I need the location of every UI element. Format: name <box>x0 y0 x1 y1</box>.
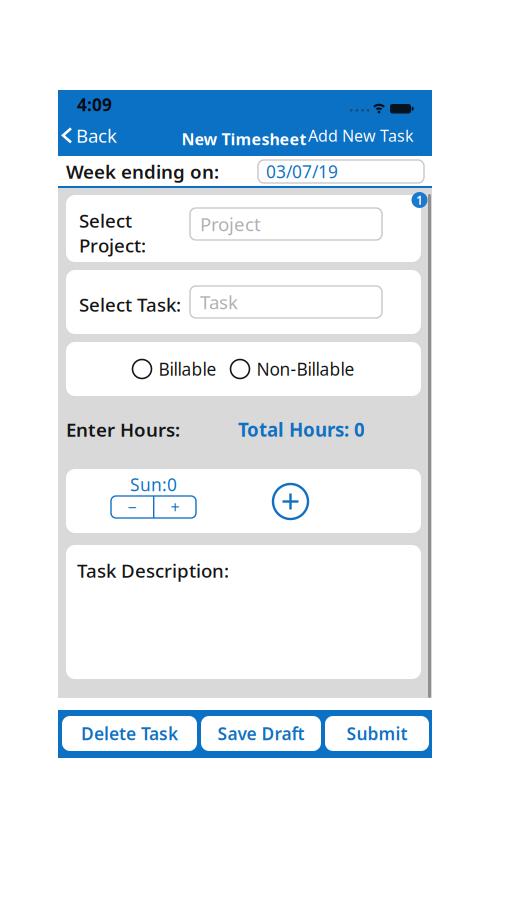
staticText: Task Description: <box>77 558 229 583</box>
button[interactable]: Submit <box>325 716 429 751</box>
button[interactable]: Delete Task <box>62 716 197 751</box>
staticText: + <box>170 496 179 518</box>
button[interactable]: Back <box>63 123 117 148</box>
staticText: Back <box>76 123 117 148</box>
staticText: Project <box>200 212 261 236</box>
staticText: 1 <box>416 192 423 208</box>
button[interactable]: Billable <box>132 357 216 380</box>
button[interactable]: Decrement hours <box>111 496 153 518</box>
button[interactable]: Project <box>190 208 382 240</box>
staticText: Sun:0 <box>130 473 177 496</box>
staticText: Submit <box>346 722 407 745</box>
staticText: Save Draft <box>217 722 304 745</box>
staticText: Select Project: <box>79 208 146 258</box>
staticText: Week ending on: <box>66 159 219 184</box>
button[interactable]: Add Day <box>273 484 308 519</box>
button[interactable]: 03/07/19 <box>258 160 424 183</box>
staticText: Task <box>200 290 238 314</box>
staticText: Add New Task <box>308 125 414 146</box>
staticText: Non-Billable <box>256 357 354 380</box>
staticText: − <box>127 496 136 518</box>
staticText: Enter Hours: <box>66 417 180 442</box>
staticText: Total Hours: 0 <box>238 417 365 442</box>
button[interactable]: Task <box>190 286 382 318</box>
staticText: 03/07/19 <box>266 160 338 183</box>
staticText: 4:09 <box>77 93 112 116</box>
staticText: Delete Task <box>81 722 178 745</box>
button[interactable]: Non-Billable <box>230 357 354 380</box>
staticText: New Timesheet <box>181 128 306 150</box>
button[interactable]: Increment hours <box>154 496 196 518</box>
staticText: Select Task: <box>79 292 181 317</box>
button[interactable]: Add New Task <box>290 125 414 146</box>
button[interactable]: Save Draft <box>201 716 321 751</box>
staticText: Billable <box>158 357 216 380</box>
